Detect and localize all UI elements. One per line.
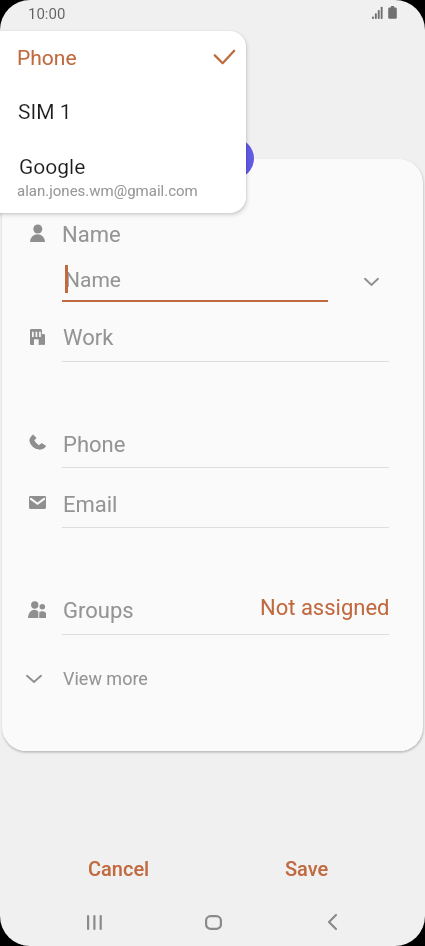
button[interactable]: Expand name fields: [351, 261, 391, 301]
button[interactable]: Not assigned: [250, 588, 398, 628]
button[interactable]: View more: [14, 656, 214, 700]
staticText: Phone: [17, 46, 77, 71]
staticText: Not assigned: [260, 595, 390, 621]
staticText: Cancel: [88, 857, 150, 880]
staticText: Email: [63, 492, 118, 518]
button[interactable]: Phone: [0, 31, 246, 87]
button[interactable]: Google: [0, 141, 246, 212]
staticText: 10:00: [28, 5, 66, 23]
button[interactable]: SIM 1: [0, 87, 246, 141]
staticText: Save: [285, 857, 329, 880]
staticText: Work: [63, 325, 114, 351]
button[interactable]: Recent apps: [70, 898, 118, 946]
staticText: Phone: [63, 432, 126, 458]
button[interactable]: Home: [189, 898, 237, 946]
staticText: View more: [63, 668, 148, 689]
button[interactable]: Save: [256, 845, 358, 891]
staticText: Google: [19, 155, 86, 180]
button[interactable]: Cancel: [68, 845, 170, 891]
button[interactable]: Back: [308, 898, 356, 946]
staticText: Name: [65, 268, 121, 293]
staticText: alan.jones.wm@gmail.com: [17, 182, 198, 200]
staticText: Name: [62, 222, 121, 248]
button[interactable]: Contact photo: [213, 138, 254, 179]
staticText: Groups: [63, 598, 134, 624]
staticText: SIM 1: [18, 100, 72, 125]
